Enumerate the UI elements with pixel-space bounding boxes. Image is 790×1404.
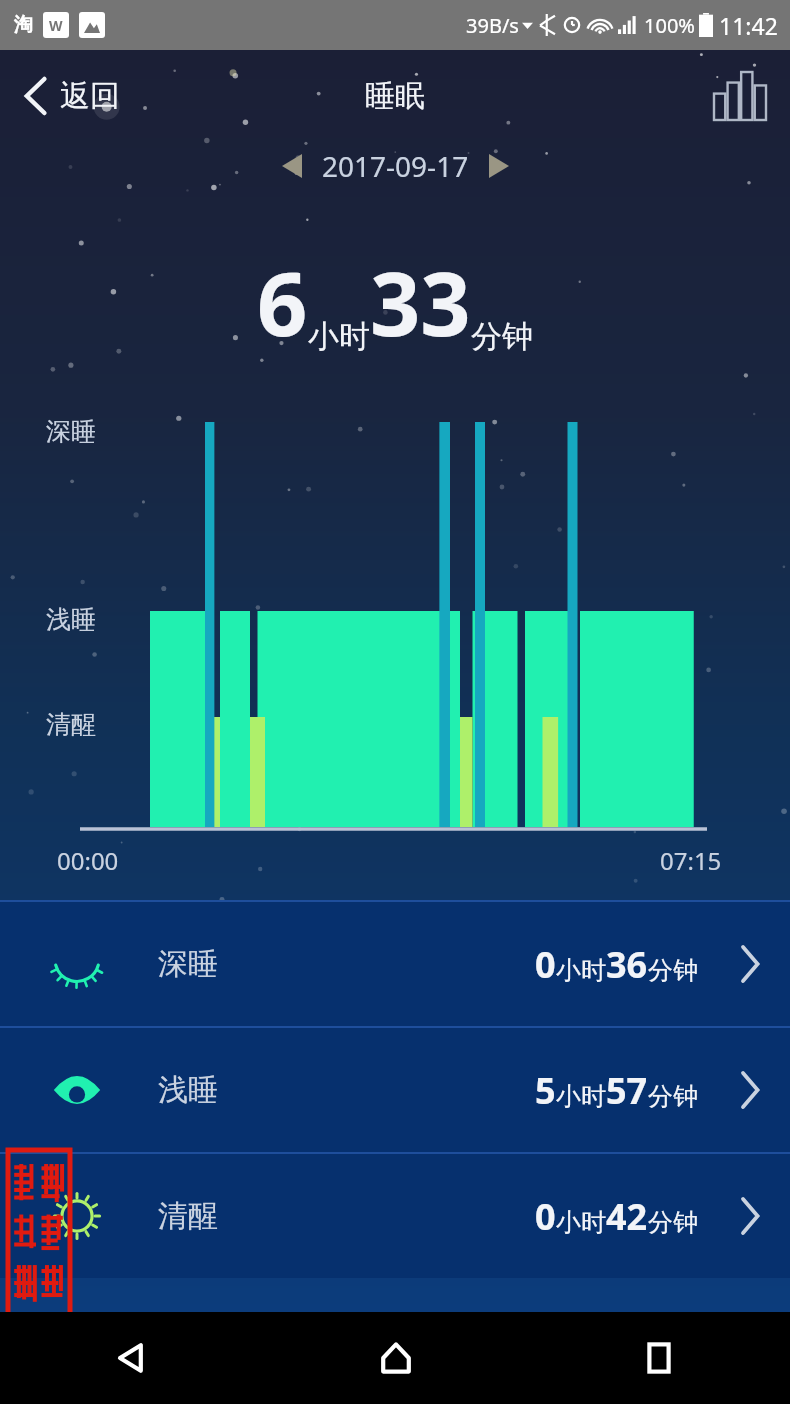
staticText: 39B/s (466, 12, 519, 39)
staticText: 2017-09-17 (322, 147, 469, 185)
staticText: 36 (606, 940, 648, 989)
staticText: 0 (535, 1192, 556, 1241)
staticText: 清醒 (158, 1197, 218, 1235)
staticText: 分钟 (648, 955, 698, 986)
staticText: 淘 (14, 13, 33, 37)
staticText: 小时 (556, 955, 606, 986)
staticText: 33 (370, 242, 471, 362)
staticText: 小时 (556, 1207, 606, 1238)
staticText: 浅睡 (46, 604, 96, 635)
staticText: 小时 (308, 317, 370, 356)
button[interactable]: 浅睡 (0, 1028, 790, 1152)
staticText: 42 (606, 1192, 648, 1241)
staticText: 分钟 (648, 1081, 698, 1112)
button[interactable]: 深睡 (0, 902, 790, 1026)
staticText: 57 (606, 1066, 648, 1115)
staticText: 浅睡 (158, 1071, 218, 1109)
staticText: 深睡 (158, 945, 218, 983)
staticText: 分钟 (471, 317, 533, 356)
button[interactable]: Next day (477, 142, 521, 190)
staticText: 小时 (556, 1081, 606, 1112)
staticText: 深睡 (46, 416, 96, 447)
button[interactable]: 返回 (0, 69, 136, 123)
button[interactable]: Previous day (270, 142, 314, 190)
staticText: 分钟 (648, 1207, 698, 1238)
button[interactable]: Recents (527, 1312, 790, 1404)
button[interactable]: 清醒 (0, 1154, 790, 1278)
button[interactable]: Back (0, 1312, 264, 1404)
staticText: 6 (257, 242, 308, 362)
staticText: 0 (535, 940, 556, 989)
button[interactable]: Home (264, 1312, 527, 1404)
staticText: 100% (644, 12, 695, 39)
staticText: 清醒 (46, 709, 96, 740)
staticText: W (49, 16, 63, 35)
staticText: 11:42 (719, 10, 778, 41)
staticText: 睡眠 (365, 77, 425, 115)
staticText: 07:15 (660, 844, 722, 877)
staticText: 5 (535, 1066, 556, 1115)
button[interactable]: Statistics (690, 58, 790, 134)
staticText: 返回 (60, 77, 120, 115)
staticText: 00:00 (57, 844, 119, 877)
